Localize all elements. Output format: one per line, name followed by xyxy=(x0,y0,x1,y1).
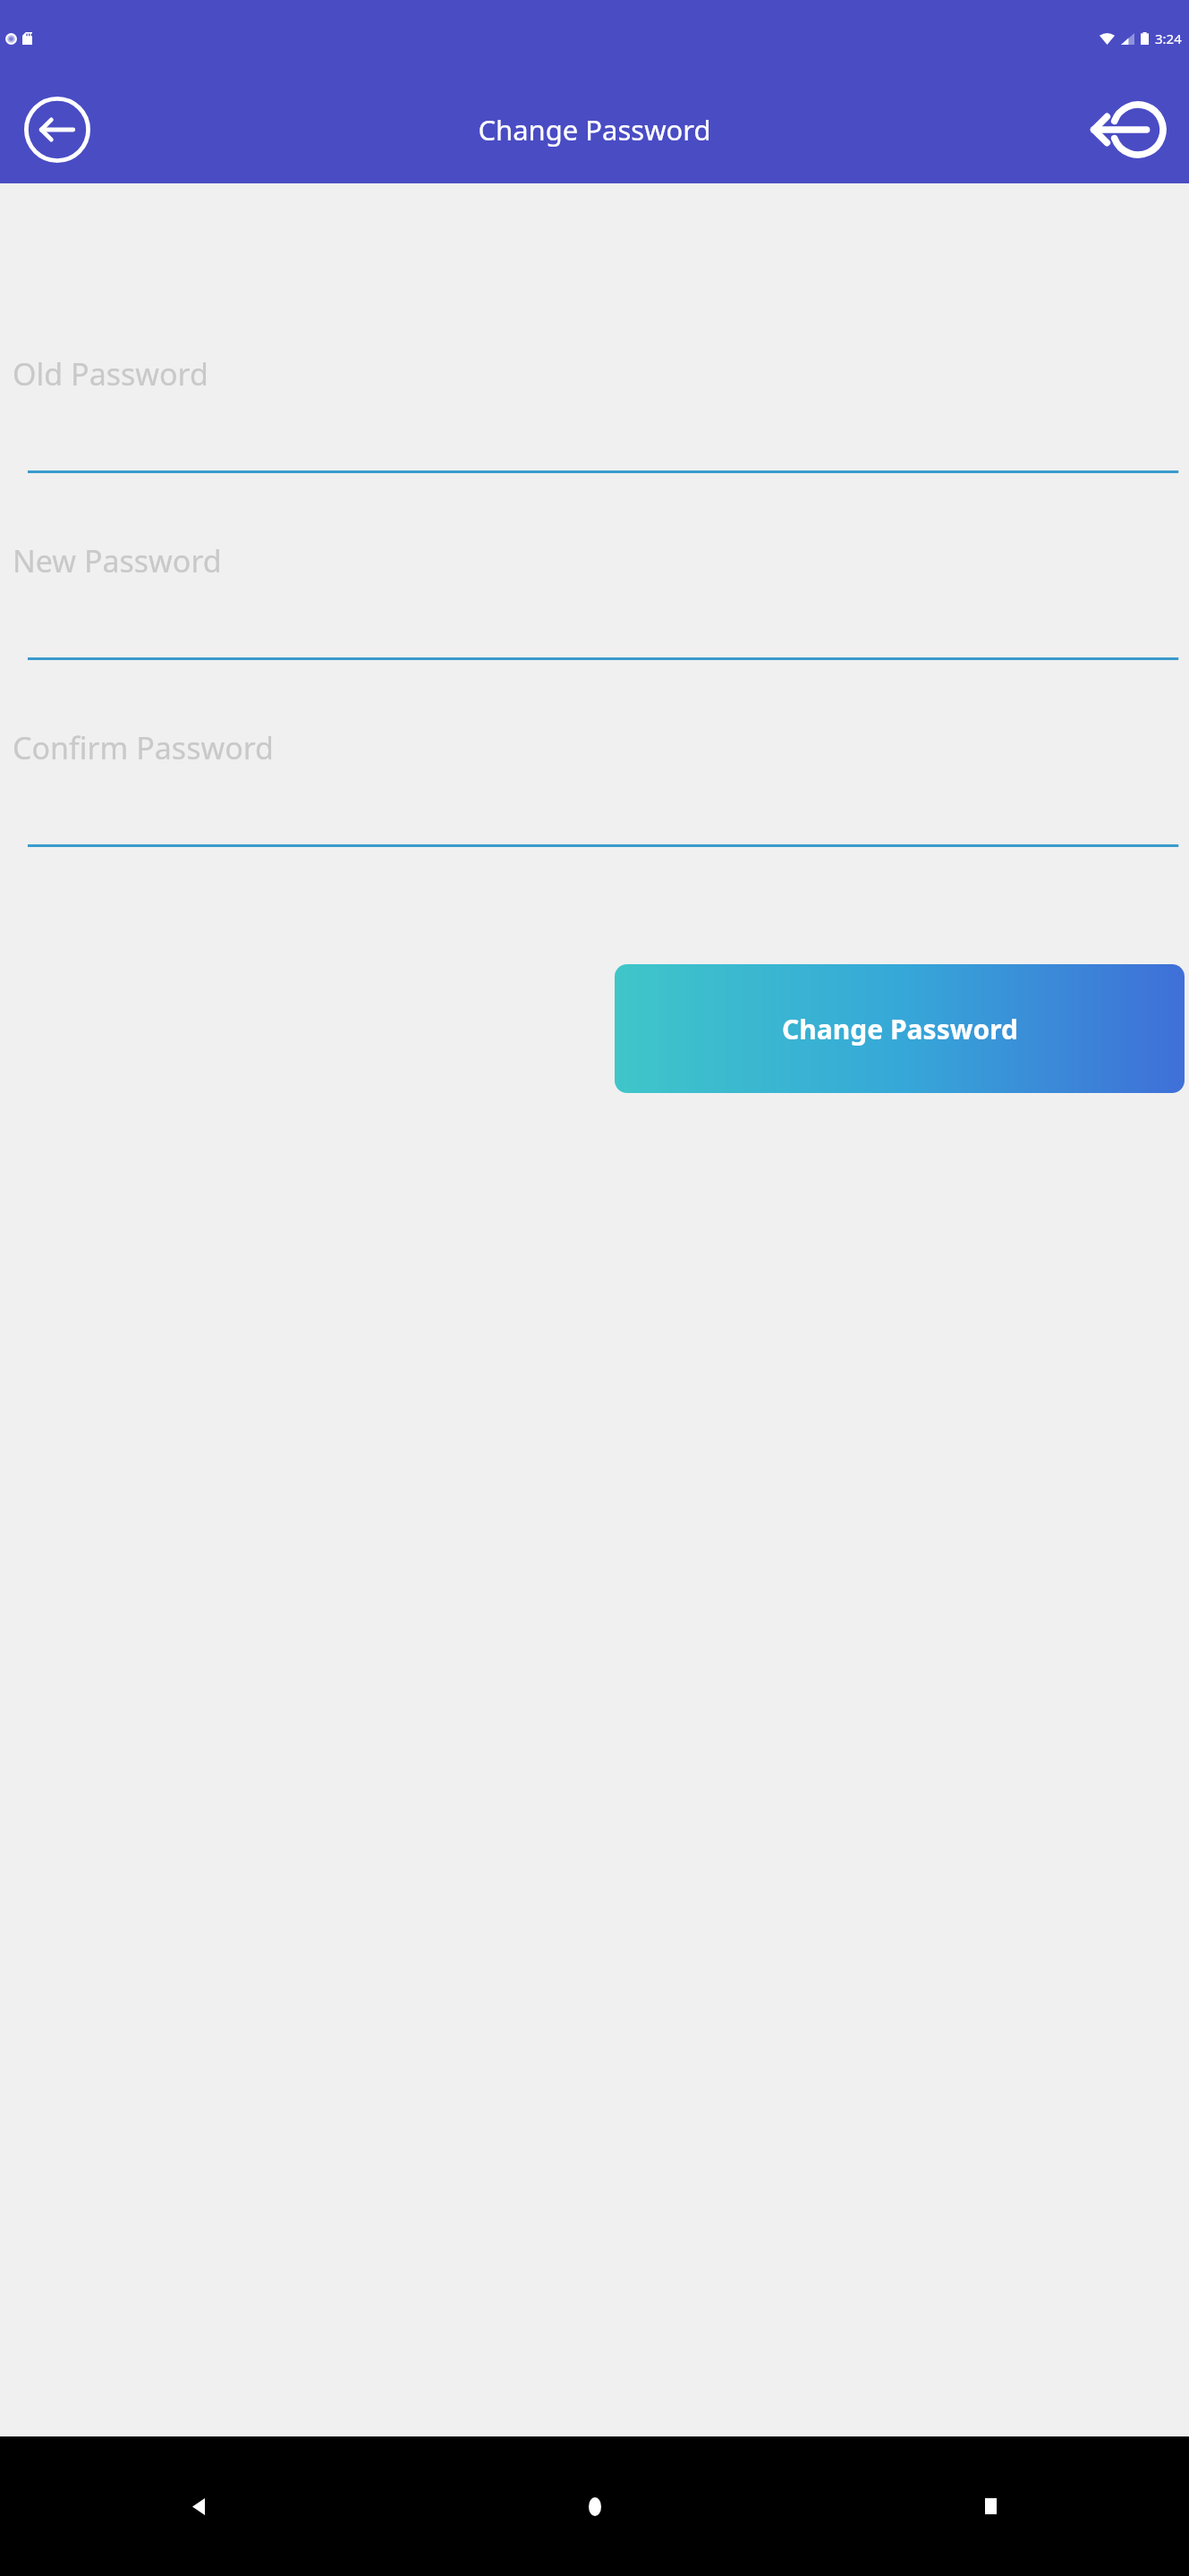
button[interactable]: Back xyxy=(0,2436,396,2576)
staticText: Change Password xyxy=(782,1011,1018,1047)
staticText: Old Password xyxy=(13,353,208,394)
button[interactable]: Back xyxy=(4,76,111,183)
staticText: Confirm Password xyxy=(13,727,274,768)
button[interactable]: Change Password xyxy=(615,964,1185,1093)
button[interactable]: Logout xyxy=(1078,76,1185,183)
button[interactable]: Old Password xyxy=(0,290,1189,473)
button[interactable]: Home xyxy=(396,2436,793,2576)
staticText: 3:24 xyxy=(1155,30,1182,47)
button[interactable]: Confirm Password xyxy=(0,665,1189,847)
button[interactable]: Recent apps xyxy=(793,2436,1189,2576)
staticText: Change Password xyxy=(478,111,711,148)
staticText: New Password xyxy=(13,540,222,581)
button[interactable]: New Password xyxy=(0,478,1189,660)
